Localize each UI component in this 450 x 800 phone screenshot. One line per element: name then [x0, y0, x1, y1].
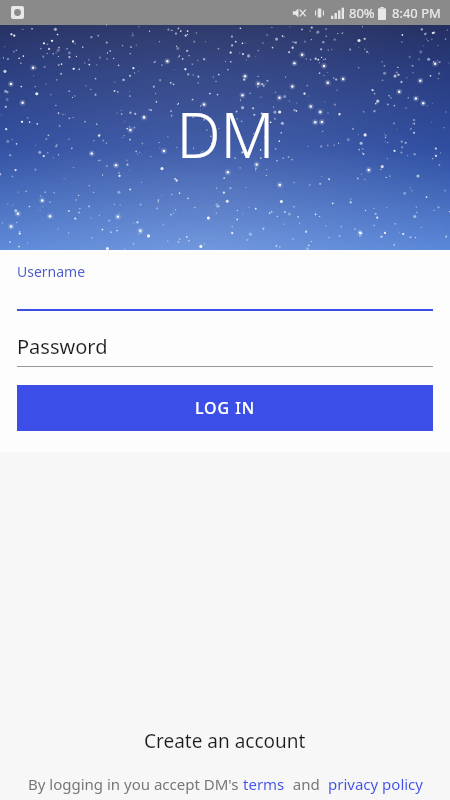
- staticText: privacy policy: [328, 774, 423, 794]
- staticText: DM: [176, 92, 275, 176]
- staticText: LOG IN: [195, 397, 256, 419]
- staticText: Password: [17, 333, 108, 360]
- button[interactable]: Username: [17, 262, 433, 311]
- button[interactable]: LOG IN: [17, 385, 433, 431]
- staticText: and: [285, 774, 328, 794]
- button[interactable]: Create an account: [128, 722, 322, 760]
- button[interactable]: privacy policy: [328, 774, 423, 794]
- staticText: Create an account: [144, 728, 306, 754]
- staticText: By logging in you accept DM's: [28, 774, 243, 794]
- staticText: terms: [243, 774, 285, 794]
- staticText: 8:40 PM: [392, 4, 441, 22]
- staticText: Username: [17, 262, 86, 281]
- button[interactable]: Password: [17, 333, 433, 367]
- button[interactable]: terms: [243, 774, 285, 794]
- staticText: 80%: [349, 4, 375, 22]
